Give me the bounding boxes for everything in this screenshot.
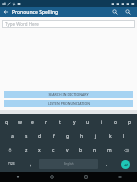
button[interactable]: y bbox=[67, 115, 81, 129]
button[interactable]: . bbox=[99, 157, 114, 171]
button[interactable]: p bbox=[123, 115, 137, 129]
staticText: e bbox=[31, 119, 34, 126]
staticText: z bbox=[25, 147, 28, 154]
staticText: j bbox=[95, 133, 97, 140]
button[interactable]: z bbox=[20, 143, 33, 157]
staticText: a bbox=[11, 133, 14, 140]
button[interactable]: u bbox=[81, 115, 95, 129]
button[interactable]: b bbox=[74, 143, 88, 157]
staticText: v bbox=[66, 147, 69, 154]
staticText: p bbox=[128, 119, 132, 126]
staticText: . bbox=[106, 161, 108, 168]
button[interactable]: s bbox=[19, 129, 33, 143]
button[interactable]: w bbox=[13, 115, 26, 129]
staticText: c bbox=[52, 147, 55, 154]
staticText: k bbox=[109, 133, 112, 140]
button[interactable]: x bbox=[33, 143, 46, 157]
button[interactable]: t bbox=[53, 115, 67, 129]
staticText: d bbox=[38, 133, 42, 140]
button[interactable]: a bbox=[6, 129, 19, 143]
button[interactable]: j bbox=[89, 129, 103, 143]
staticText: f bbox=[53, 133, 55, 140]
button[interactable]: Search bbox=[108, 7, 121, 17]
staticText: t bbox=[59, 119, 61, 126]
button[interactable]: v bbox=[60, 143, 74, 157]
button[interactable]: o bbox=[109, 115, 123, 129]
staticText: n bbox=[93, 147, 97, 154]
staticText: r bbox=[45, 119, 48, 126]
staticText: English bbox=[64, 162, 74, 166]
button[interactable]: SEARCH IN DICTIONARY bbox=[4, 91, 133, 98]
staticText: x bbox=[38, 147, 41, 154]
button[interactable]: Back bbox=[0, 172, 35, 182]
button[interactable]: n bbox=[88, 143, 102, 157]
staticText: SEARCH IN DICTIONARY bbox=[48, 92, 89, 97]
button[interactable]: Backspace bbox=[116, 143, 137, 157]
button[interactable]: k bbox=[103, 129, 117, 143]
button[interactable]: c bbox=[46, 143, 60, 157]
button[interactable]: q bbox=[0, 115, 13, 129]
button[interactable]: d bbox=[33, 129, 47, 143]
staticText: y bbox=[73, 119, 76, 126]
staticText: m bbox=[107, 147, 112, 154]
button[interactable]: h bbox=[75, 129, 89, 143]
staticText: l bbox=[123, 133, 125, 140]
button[interactable]: e bbox=[26, 115, 39, 129]
button[interactable]: Type Word Here bbox=[2, 20, 135, 28]
button[interactable]: Shift bbox=[0, 143, 20, 157]
button[interactable]: r bbox=[39, 115, 53, 129]
staticText: , bbox=[30, 161, 32, 168]
staticText: q bbox=[5, 119, 9, 126]
button[interactable]: Home bbox=[35, 172, 69, 182]
button[interactable]: g bbox=[61, 129, 75, 143]
staticText: LISTEN PRONUNCIATION bbox=[48, 101, 90, 106]
staticText: i bbox=[101, 119, 103, 126]
button[interactable]: i bbox=[95, 115, 109, 129]
button[interactable]: , bbox=[23, 157, 38, 171]
staticText: o bbox=[114, 119, 118, 126]
staticText: Pronounce Spelling bbox=[12, 9, 108, 16]
staticText: h bbox=[80, 133, 84, 140]
button[interactable]: Space bbox=[39, 159, 98, 169]
button[interactable]: f bbox=[47, 129, 61, 143]
button[interactable]: Symbols bbox=[0, 157, 23, 171]
staticText: u bbox=[86, 119, 90, 126]
button[interactable]: l bbox=[117, 129, 131, 143]
button[interactable]: Voice search bbox=[121, 7, 134, 17]
staticText: w bbox=[18, 119, 22, 126]
button[interactable]: Keyboard bbox=[103, 172, 137, 182]
button[interactable]: Back bbox=[0, 7, 12, 17]
staticText: g bbox=[66, 133, 70, 140]
staticText: Type Word Here bbox=[5, 21, 39, 27]
staticText: b bbox=[79, 147, 83, 154]
button[interactable]: Enter bbox=[114, 157, 137, 171]
staticText: ?123 bbox=[8, 162, 15, 166]
button[interactable]: m bbox=[102, 143, 116, 157]
button[interactable]: LISTEN PRONUNCIATION bbox=[4, 100, 133, 107]
staticText: s bbox=[25, 133, 28, 140]
button[interactable]: Recents bbox=[69, 172, 103, 182]
